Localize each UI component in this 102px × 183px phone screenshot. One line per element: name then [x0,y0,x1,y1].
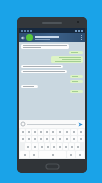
button[interactable] [45,143,50,150]
button[interactable] [57,129,63,135]
button[interactable] [70,90,83,93]
button[interactable] [38,136,43,142]
button[interactable] [78,136,84,142]
button[interactable] [51,56,83,63]
button[interactable] [20,151,29,158]
button[interactable] [71,136,77,142]
button[interactable] [78,129,84,135]
button[interactable] [57,136,63,142]
button[interactable] [26,129,31,135]
button[interactable] [70,75,83,78]
button[interactable] [64,129,70,135]
button[interactable] [32,136,37,142]
button[interactable]: More options [80,35,83,40]
button[interactable] [30,151,38,158]
button[interactable] [39,143,44,150]
button[interactable] [20,129,25,135]
button[interactable] [26,136,31,142]
button[interactable] [25,143,31,150]
button[interactable] [21,70,67,73]
button[interactable] [38,129,43,135]
button[interactable] [32,143,38,150]
button[interactable] [75,143,80,150]
button[interactable] [44,129,49,135]
button[interactable] [20,136,25,142]
button[interactable] [76,151,84,158]
button[interactable]: Emoji [21,122,25,126]
button[interactable] [69,143,74,150]
button[interactable] [21,85,38,88]
button[interactable] [71,129,77,135]
button[interactable] [39,151,66,158]
button[interactable]: Send [78,122,83,127]
button[interactable] [70,80,83,83]
button[interactable]: Back [19,33,85,42]
button[interactable] [21,44,69,49]
button[interactable] [67,151,75,158]
button[interactable]: Back [21,36,25,40]
button[interactable] [44,136,49,142]
button[interactable] [69,51,83,54]
button[interactable] [63,143,68,150]
button[interactable] [57,143,62,150]
button[interactable]: Contact avatar [26,34,33,41]
button[interactable] [50,129,56,135]
button[interactable] [51,143,56,150]
button[interactable]: Home [46,164,59,169]
button[interactable] [50,136,56,142]
button[interactable] [32,129,37,135]
button[interactable] [64,136,70,142]
button[interactable] [21,65,63,68]
